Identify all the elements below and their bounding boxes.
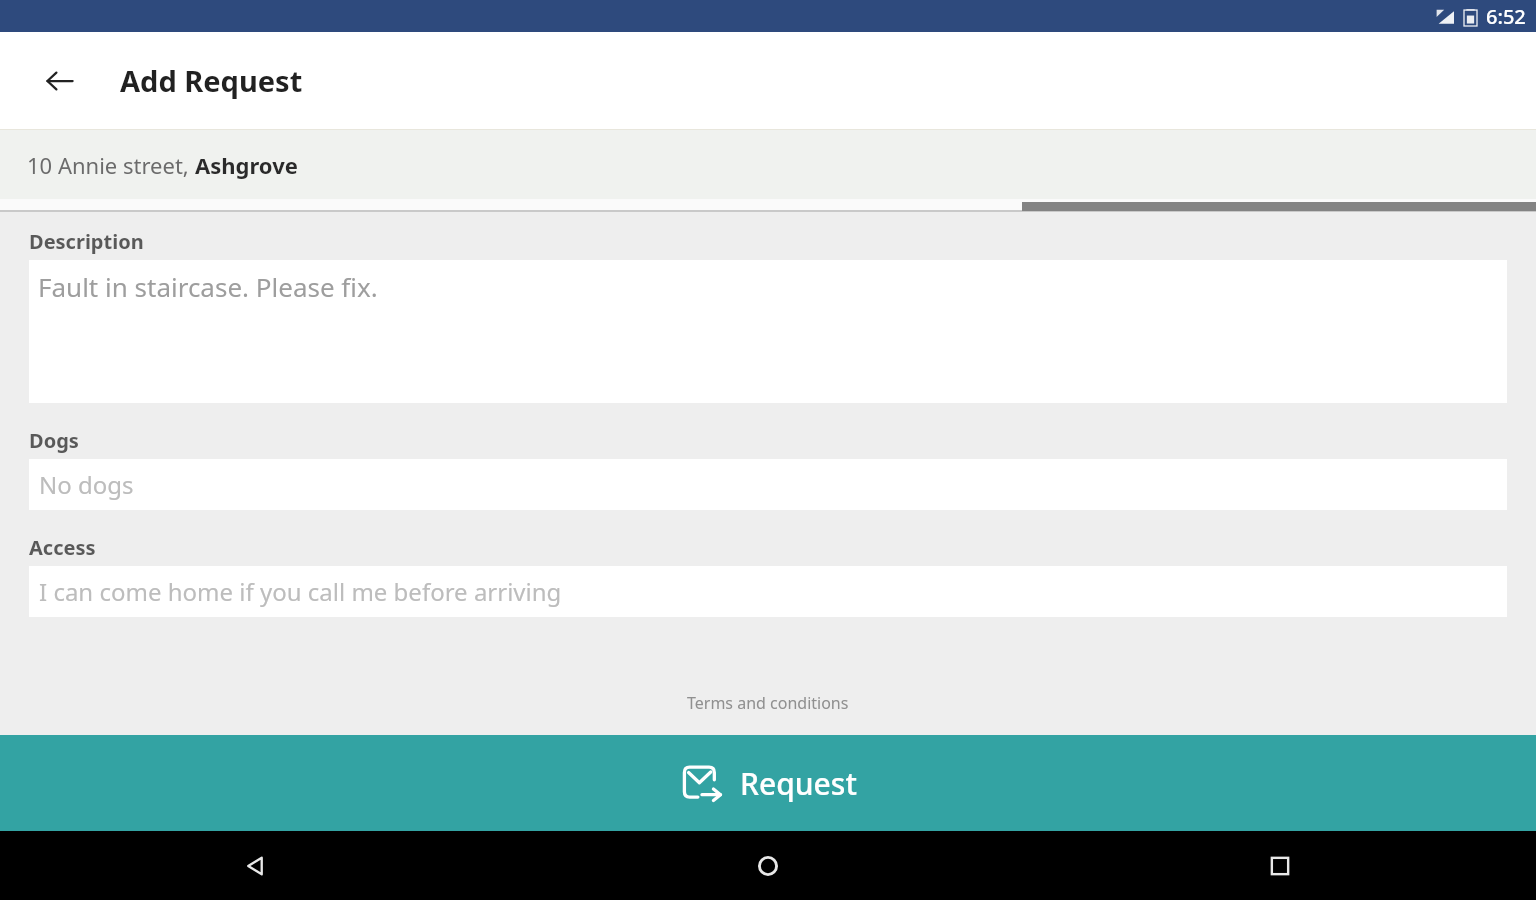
button[interactable]: Request — [0, 735, 1536, 831]
staticText: No dogs — [39, 468, 134, 501]
staticText: I can come home if you call me before ar… — [39, 575, 562, 608]
staticText: Access — [29, 534, 96, 561]
button[interactable]: I can come home if you call me before ar… — [29, 566, 1507, 617]
button[interactable]: No dogs — [29, 459, 1507, 510]
staticText: Dogs — [29, 427, 79, 454]
staticText: Ashgrove — [195, 150, 298, 180]
button[interactable]: Recents — [1024, 831, 1536, 900]
button[interactable]: Terms and conditions — [683, 688, 853, 718]
staticText: Add Request — [120, 61, 303, 100]
staticText: 10 Annie street, — [27, 150, 195, 180]
staticText: 6:52 — [1486, 3, 1526, 30]
button[interactable]: Home — [512, 831, 1024, 900]
staticText: Request — [740, 763, 857, 804]
staticText: Terms and conditions — [687, 692, 849, 714]
button[interactable]: Back — [0, 831, 512, 900]
staticText: Fault in staircase. Please fix. — [38, 269, 378, 304]
staticText: Description — [29, 228, 144, 255]
button[interactable]: Back — [36, 57, 84, 105]
button[interactable]: Fault in staircase. Please fix. — [29, 260, 1507, 403]
